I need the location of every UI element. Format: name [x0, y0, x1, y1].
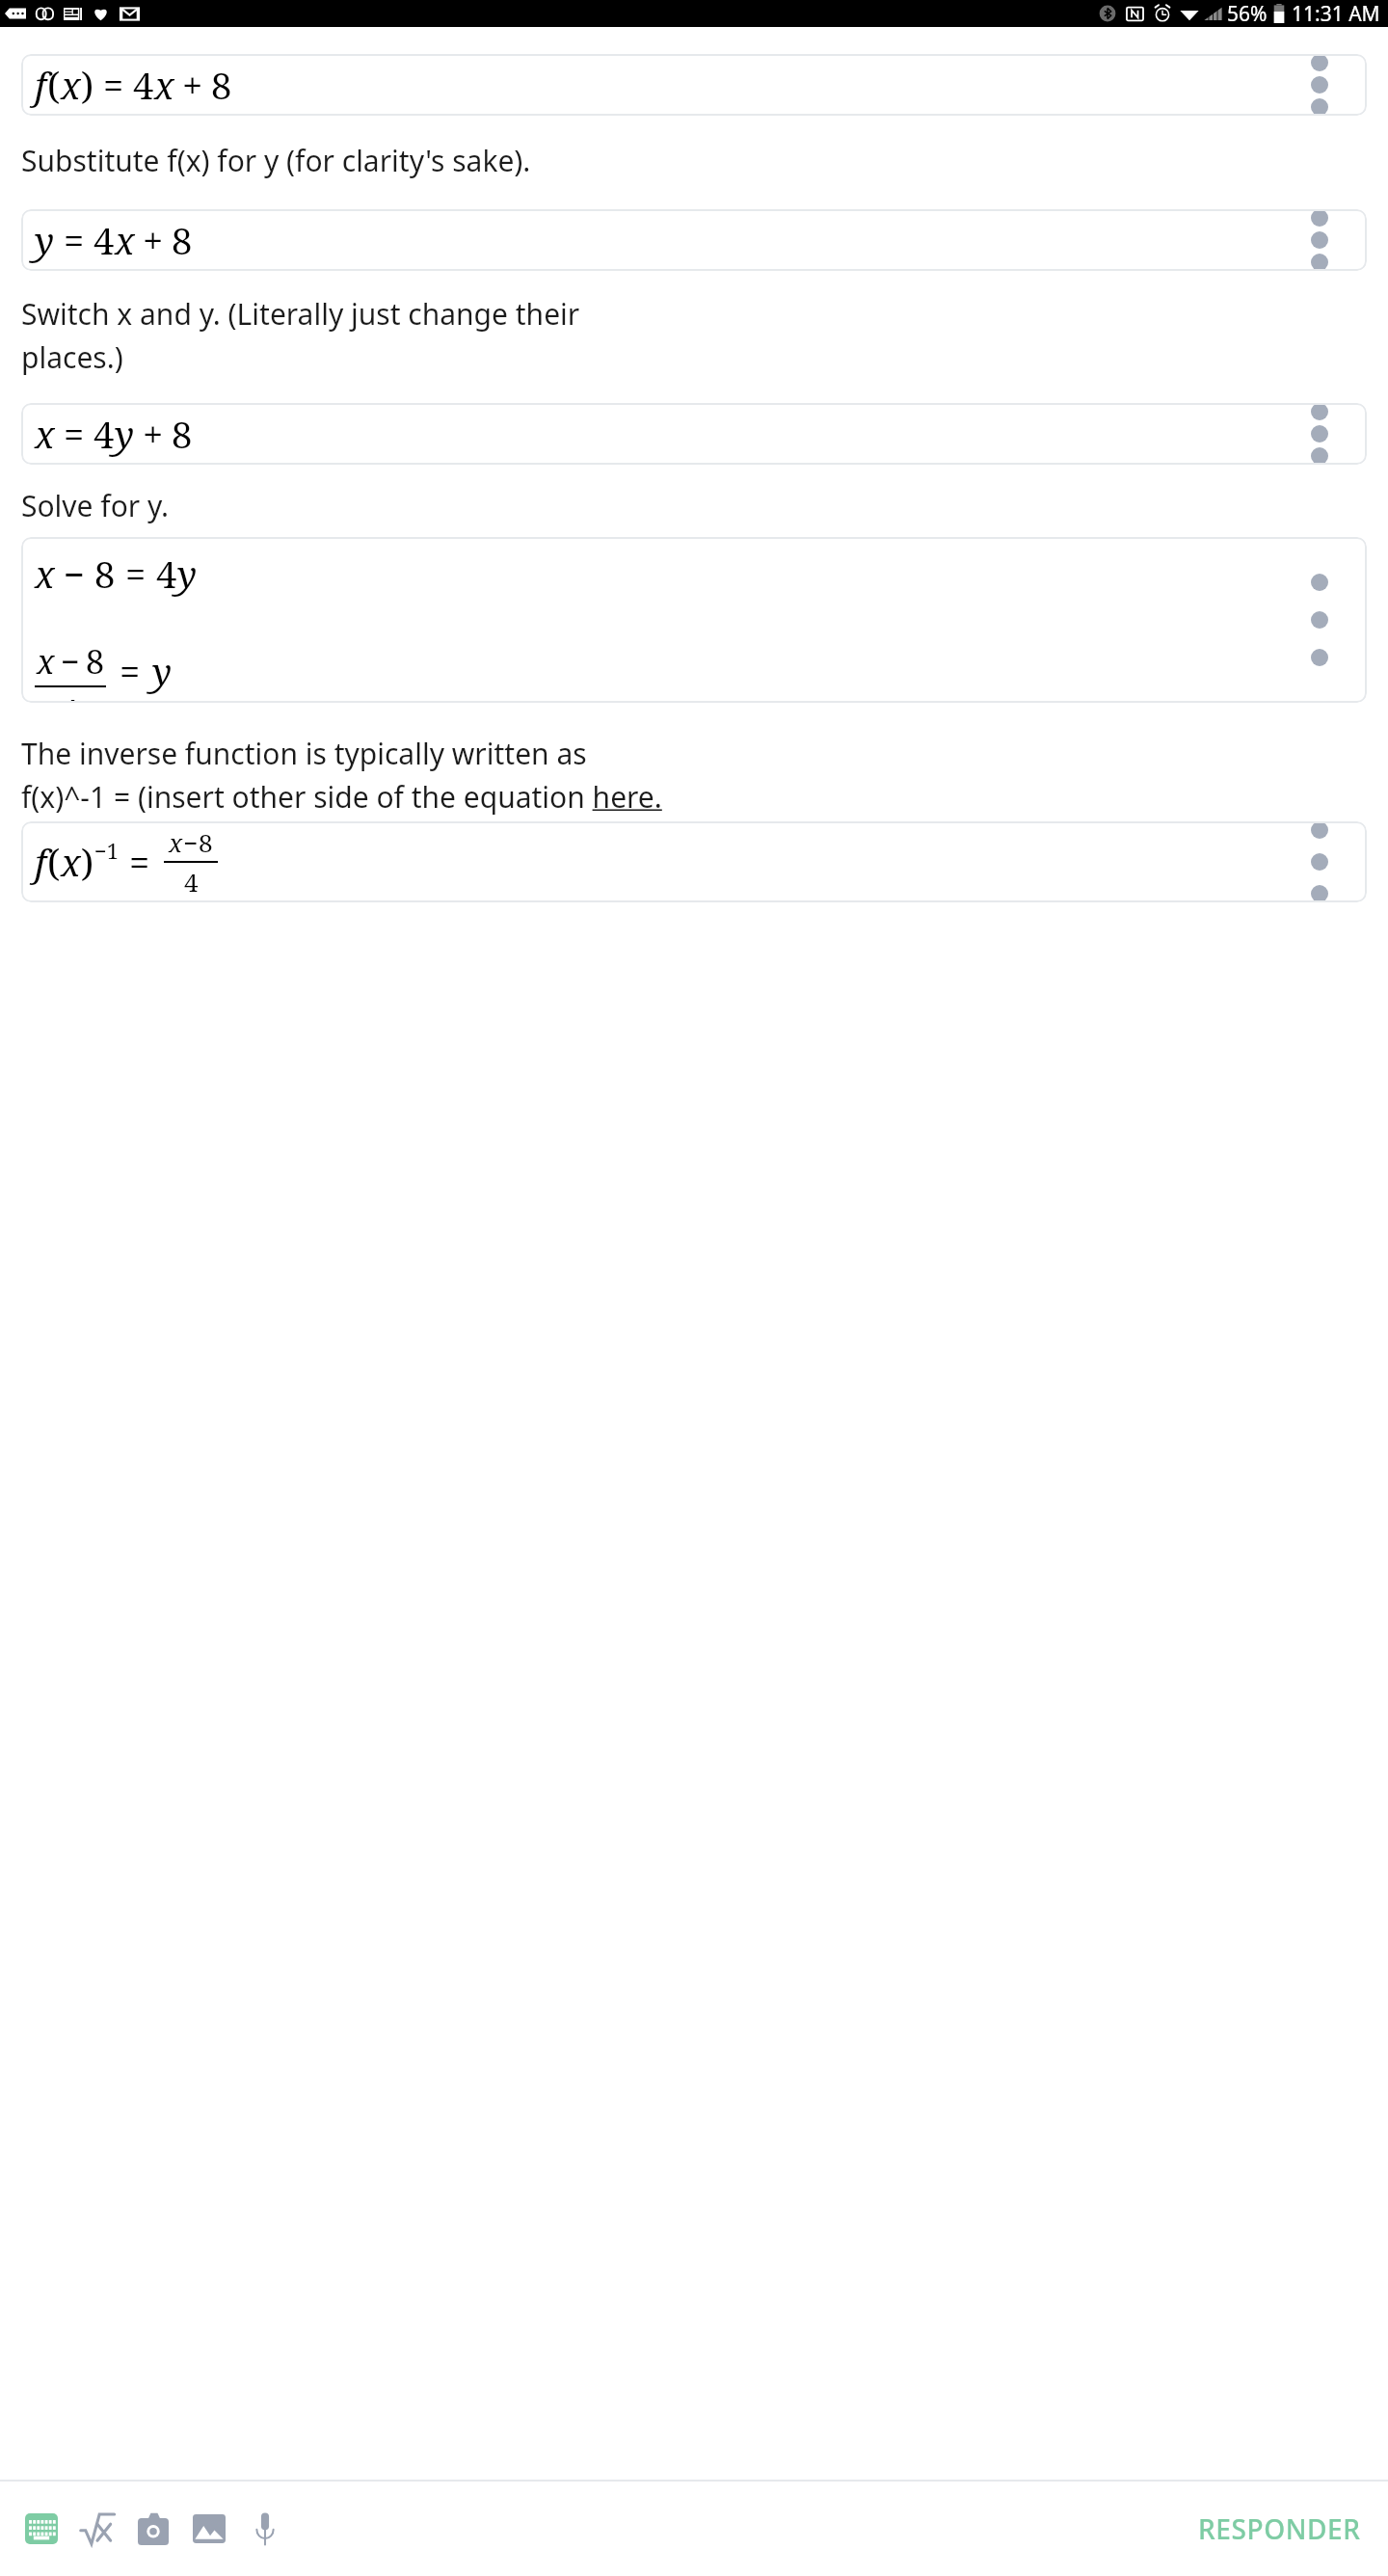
staticText: x [61, 60, 81, 110]
staticText: x [37, 639, 55, 684]
button[interactable]: y [21, 209, 1367, 271]
staticText: Solve for y. [21, 486, 170, 525]
staticText: y [177, 549, 198, 599]
staticText: 4 [93, 215, 115, 265]
staticText: 8 [94, 549, 116, 599]
staticText: 8 [172, 215, 193, 265]
staticText: − [183, 825, 199, 859]
button[interactable]: Gallery [181, 2501, 237, 2557]
staticText: 56% [1227, 0, 1268, 27]
staticText: Switch x and y. (Literally just change t… [21, 294, 580, 376]
button[interactable]: x [21, 537, 1367, 703]
button[interactable]: Math keyboard [69, 2501, 125, 2557]
button[interactable]: More options [1282, 403, 1357, 465]
button[interactable]: More options [1282, 54, 1357, 116]
button[interactable]: More options [1282, 209, 1357, 271]
staticText: x [35, 549, 55, 599]
staticText: y [35, 215, 55, 265]
button[interactable]: Microphone [237, 2501, 293, 2557]
button[interactable]: x [21, 403, 1367, 465]
staticText: = [120, 646, 141, 696]
staticText: RESPONDER [1198, 2510, 1361, 2547]
staticText: = [64, 215, 85, 265]
button[interactable]: f [21, 54, 1367, 116]
staticText: + [182, 60, 203, 110]
staticText: 4 [93, 409, 115, 459]
staticText: 8 [211, 60, 232, 110]
staticText: f [35, 837, 47, 887]
button[interactable]: More options [1282, 562, 1357, 678]
staticText: 4 [133, 60, 154, 110]
staticText: = [103, 60, 124, 110]
staticText: x [61, 837, 81, 887]
staticText: − [61, 639, 80, 684]
staticText: y [152, 646, 173, 696]
staticText: 4 [61, 689, 80, 703]
staticText: −1 [94, 836, 120, 865]
staticText: 4 [156, 549, 177, 599]
staticText: x [115, 215, 135, 265]
button[interactable]: f [21, 821, 1367, 902]
staticText: 11:31 AM [1292, 0, 1380, 27]
button[interactable]: Camera [125, 2501, 181, 2557]
staticText: y [115, 409, 135, 459]
staticText: = [125, 549, 147, 599]
staticText: 8 [199, 825, 213, 859]
staticText: f [35, 60, 47, 110]
staticText: − [64, 549, 86, 599]
button[interactable]: RESPONDER [1185, 2501, 1375, 2557]
staticText: + [143, 409, 164, 459]
staticText: x [154, 60, 174, 110]
staticText: Substitute f(x) for y (for clarity's sak… [21, 141, 531, 180]
staticText: = [64, 409, 85, 459]
staticText: x [35, 409, 55, 459]
staticText: ( [47, 837, 61, 887]
staticText: x [169, 825, 183, 859]
staticText: 8 [172, 409, 193, 459]
staticText: ) [81, 60, 94, 110]
staticText: ( [47, 60, 61, 110]
staticText: ) [81, 837, 94, 887]
staticText: The inverse function is typically writte… [21, 734, 662, 816]
staticText: = [129, 837, 150, 887]
button[interactable]: More options [1282, 821, 1357, 902]
staticText: 8 [86, 639, 105, 684]
button[interactable]: Keyboard [13, 2501, 69, 2557]
staticText: 4 [184, 865, 199, 899]
staticText: + [143, 215, 164, 265]
